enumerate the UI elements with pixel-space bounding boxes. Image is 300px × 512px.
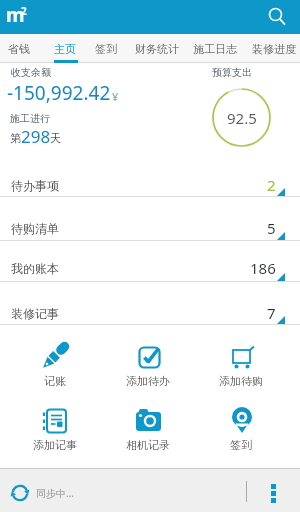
button[interactable]: 同步中... xyxy=(10,483,75,503)
staticText: 添加待办 xyxy=(126,374,170,388)
staticText: 收支余额 xyxy=(11,66,51,79)
staticText: 第 xyxy=(10,131,21,145)
staticText: 施工进行 xyxy=(10,112,50,125)
button[interactable]: 添加记事 xyxy=(10,400,100,456)
staticText: 我的账本 xyxy=(11,261,59,276)
button[interactable]: 装修进度 xyxy=(248,34,300,63)
staticText: 签到 xyxy=(95,42,117,56)
button[interactable] xyxy=(246,468,300,512)
staticText: 2 xyxy=(267,175,276,195)
staticText: 添加待购 xyxy=(219,374,263,388)
staticText: 待购清单 xyxy=(11,221,59,236)
button[interactable]: 省钱 xyxy=(4,34,34,63)
button[interactable]: 签到 xyxy=(91,34,121,63)
button[interactable]: 待购清单 xyxy=(0,207,300,249)
button[interactable]: 相机记录 xyxy=(103,400,193,456)
staticText: 装修进度 xyxy=(252,42,296,56)
button[interactable]: 装修记事 xyxy=(0,292,300,334)
staticText: 待办事项 xyxy=(11,178,59,193)
staticText: 财务统计 xyxy=(135,42,179,56)
staticText: 主页 xyxy=(54,42,76,56)
staticText: 186 xyxy=(250,258,276,278)
button[interactable]: 财务统计 xyxy=(131,34,183,63)
staticText: 施工日志 xyxy=(193,42,237,56)
button[interactable]: 记账 xyxy=(10,336,100,392)
staticText: 记账 xyxy=(44,374,66,388)
staticText: -150,992.42 xyxy=(7,80,111,106)
staticText: 2 xyxy=(21,4,27,18)
button[interactable]: 主页 xyxy=(50,34,80,63)
staticText: 相机记录 xyxy=(126,438,170,452)
staticText: 同步中... xyxy=(36,486,75,500)
staticText: 298 xyxy=(21,125,51,148)
staticText: 7 xyxy=(267,303,276,323)
staticText: m xyxy=(6,2,25,28)
staticText: 预算支出 xyxy=(212,66,252,79)
button[interactable]: 签到 xyxy=(196,400,286,456)
staticText: 省钱 xyxy=(8,42,30,56)
button[interactable]: 我的账本 xyxy=(0,247,300,289)
staticText: 添加记事 xyxy=(33,438,77,452)
button[interactable]: 添加待办 xyxy=(103,336,193,392)
staticText: 5 xyxy=(267,218,276,238)
button[interactable]: 待办事项 xyxy=(0,164,300,206)
button[interactable]: 添加待购 xyxy=(196,336,286,392)
button[interactable]: 施工日志 xyxy=(189,34,241,63)
staticText: 签到 xyxy=(230,438,252,452)
button[interactable] xyxy=(260,0,300,34)
staticText: 装修记事 xyxy=(11,306,59,321)
staticText: 天 xyxy=(50,131,61,145)
staticText: ¥ xyxy=(112,89,119,104)
staticText: 92.5 xyxy=(227,108,257,126)
